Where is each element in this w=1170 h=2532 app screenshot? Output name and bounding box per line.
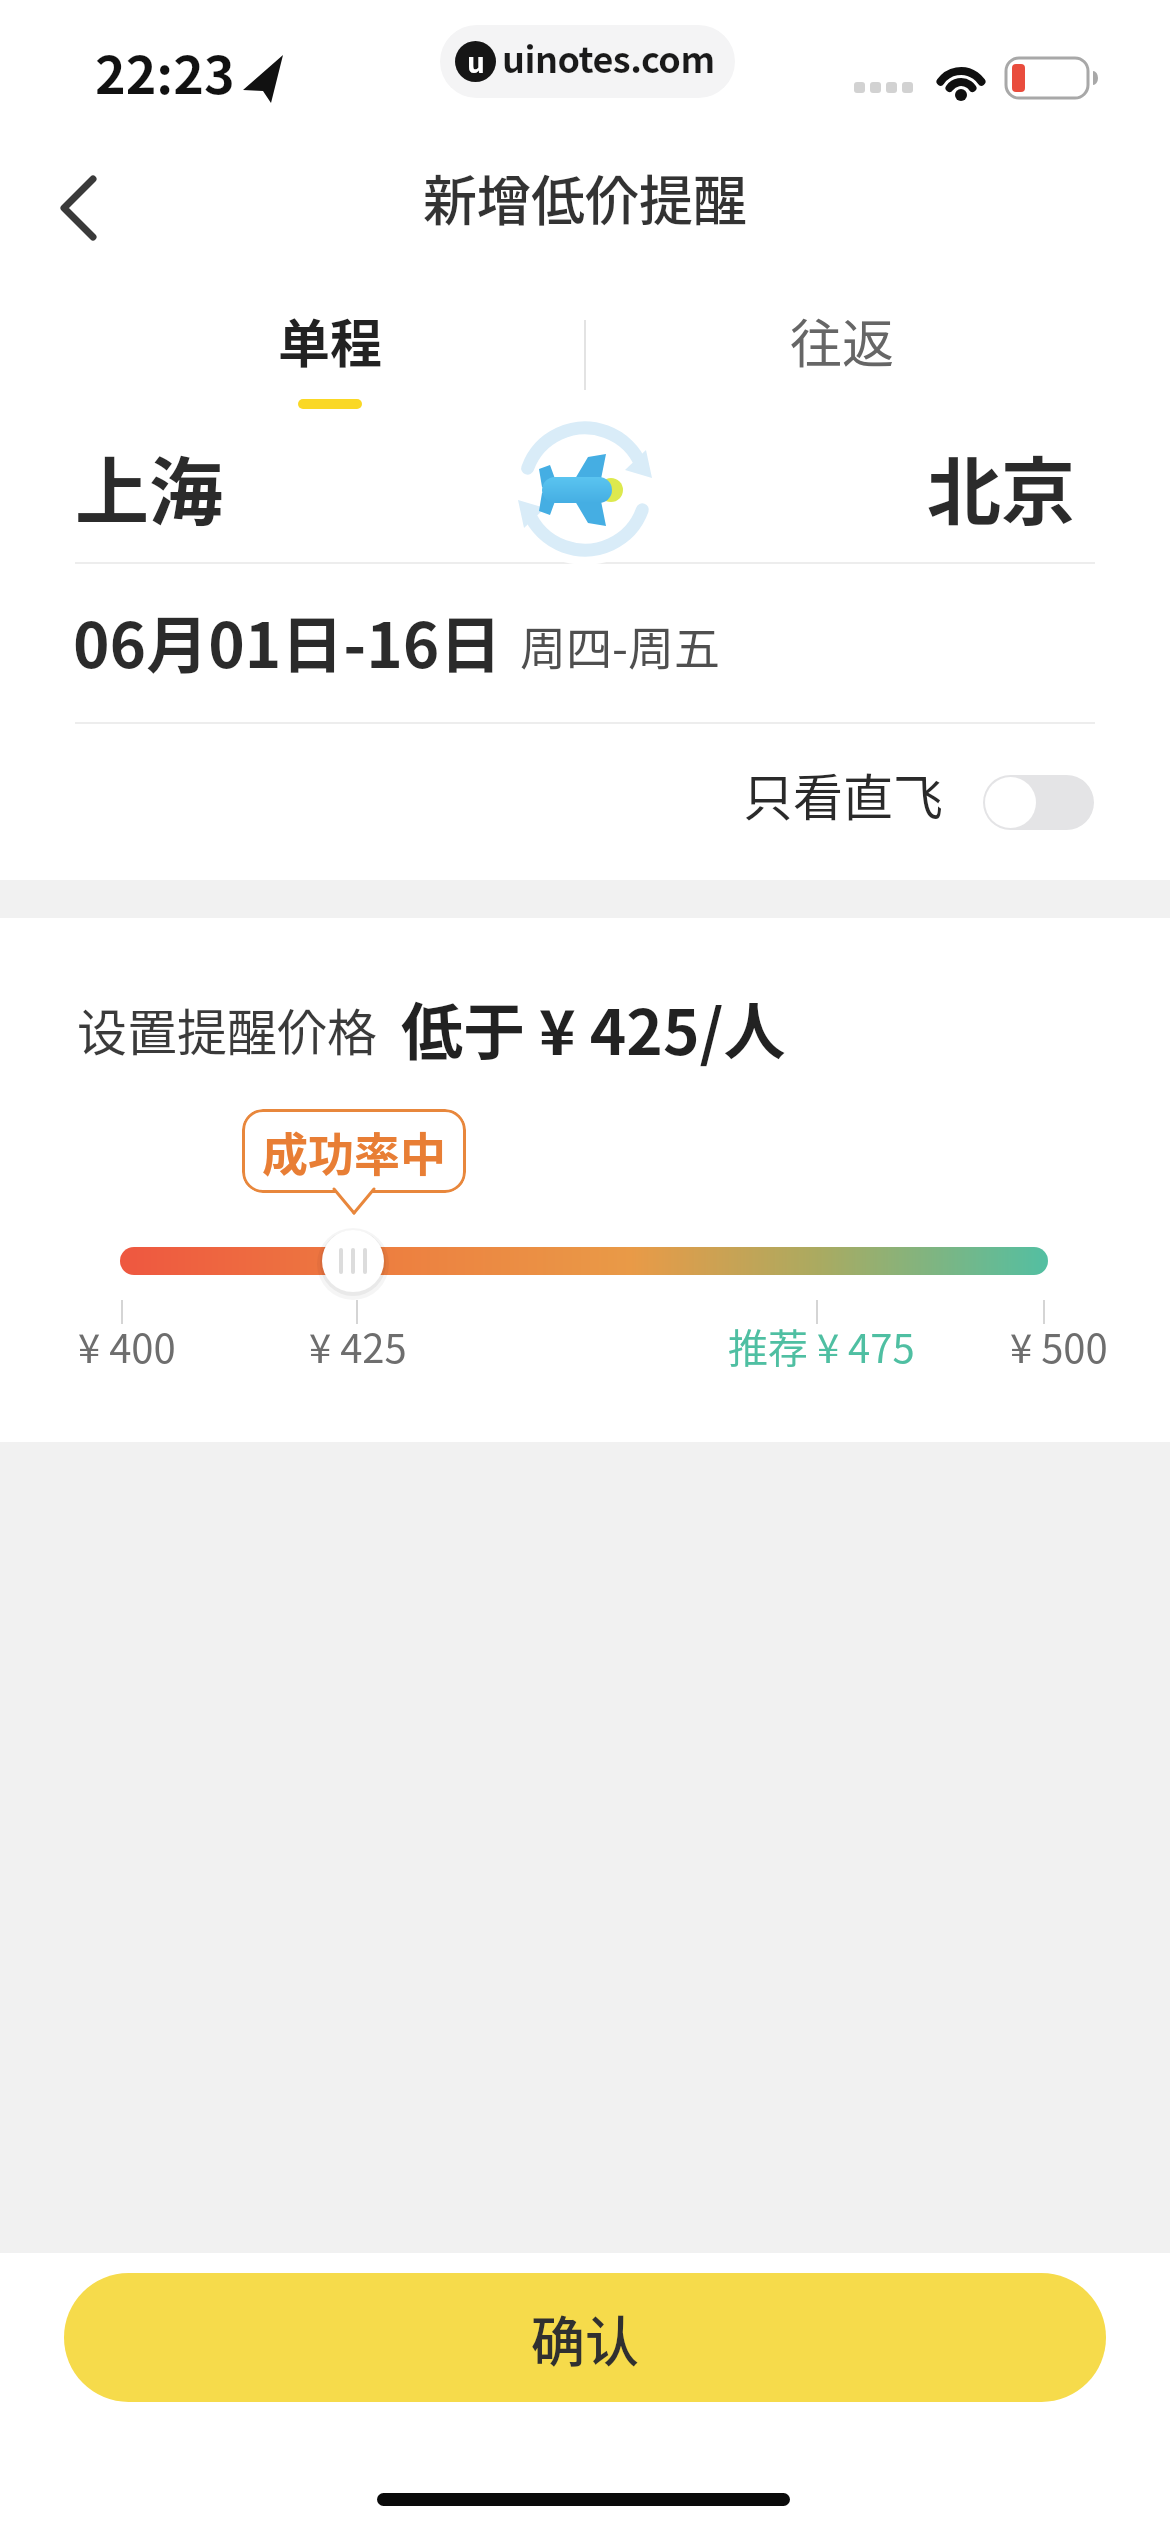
button[interactable]: 确认 bbox=[64, 2273, 1106, 2402]
staticText: 往返 bbox=[790, 303, 895, 378]
staticText: u bbox=[467, 41, 485, 82]
staticText: 设置提醒价格 bbox=[77, 993, 377, 1065]
staticText: 22:23 bbox=[95, 34, 235, 109]
button[interactable]: 06月01日-16日 bbox=[73, 596, 502, 686]
staticText: 上海 bbox=[75, 433, 223, 540]
button[interactable]: 上海 bbox=[75, 433, 223, 540]
staticText: 06月01日-16日 bbox=[73, 596, 502, 686]
button[interactable] bbox=[40, 160, 140, 255]
staticText: 新增低价提醒 bbox=[423, 158, 747, 236]
staticText: 成功率中 bbox=[262, 1118, 446, 1185]
staticText: 单程 bbox=[278, 303, 383, 378]
button[interactable] bbox=[983, 775, 1094, 830]
staticText: ¥ 500 bbox=[1010, 1317, 1108, 1375]
staticText: 周四-周五 bbox=[520, 612, 720, 679]
staticText: 确认 bbox=[531, 2299, 639, 2377]
button[interactable]: 北京 bbox=[927, 433, 1075, 540]
staticText: ¥ 425 bbox=[309, 1317, 407, 1375]
staticText: uinotes.com bbox=[502, 31, 715, 83]
staticText: 只看直飞 bbox=[743, 758, 943, 830]
button[interactable]: 单程 bbox=[235, 290, 425, 390]
staticText: 北京 bbox=[927, 433, 1075, 540]
staticText: 低于 ¥ 425/人 bbox=[401, 983, 786, 1073]
staticText: ¥ 400 bbox=[78, 1317, 176, 1375]
staticText: 推荐 ¥ 475 bbox=[728, 1317, 915, 1375]
button[interactable]: 往返 bbox=[747, 290, 937, 390]
